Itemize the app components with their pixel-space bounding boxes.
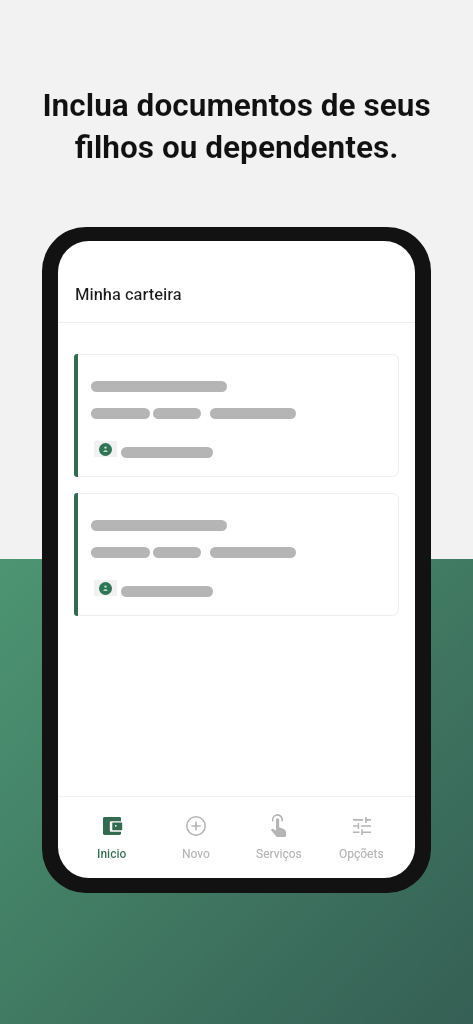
button[interactable]: Opçõets — [320, 797, 403, 861]
button[interactable]: Inicio — [70, 797, 154, 861]
staticText: Minha carteira — [75, 285, 182, 304]
staticText: Novo — [182, 847, 210, 861]
button[interactable] — [74, 354, 399, 477]
staticText: Serviços — [256, 847, 302, 861]
staticText: Inicio — [97, 847, 127, 861]
button[interactable]: Serviços — [237, 797, 320, 861]
button[interactable]: Novo — [154, 797, 237, 861]
staticText: Inclua documentos de seus filhos ou depe… — [0, 87, 473, 166]
button[interactable] — [74, 493, 399, 616]
staticText: Opçõets — [339, 847, 384, 861]
